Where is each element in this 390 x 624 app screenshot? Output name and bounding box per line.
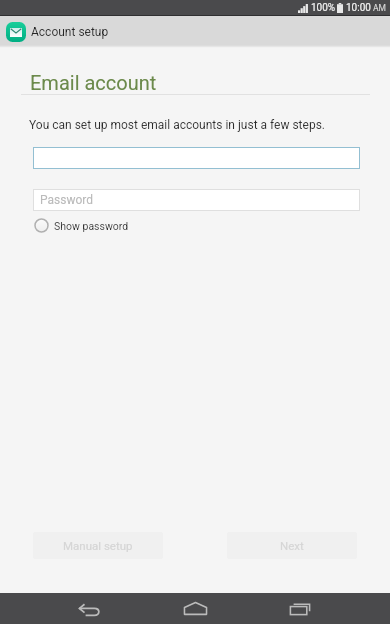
button[interactable]: Next [227,532,357,559]
button[interactable]: Email address [33,147,360,169]
staticText: 10:00 [346,2,371,14]
staticText: 100% [311,2,336,14]
staticText: You can set up most email accounts in ju… [29,118,325,132]
staticText: Show password [54,220,129,232]
staticText: Manual setup [63,539,133,552]
button[interactable]: Home [159,593,231,624]
button[interactable]: Recent apps [264,593,336,624]
staticText: Password [40,193,94,207]
staticText: Account setup [31,25,109,39]
button[interactable]: Back [54,593,126,624]
staticText: AM [373,3,386,13]
button[interactable]: Manual setup [33,532,163,559]
staticText: Next [280,539,304,552]
staticText: Email account [30,71,157,94]
button[interactable]: Password [33,189,360,211]
button[interactable]: Show password [34,218,129,233]
